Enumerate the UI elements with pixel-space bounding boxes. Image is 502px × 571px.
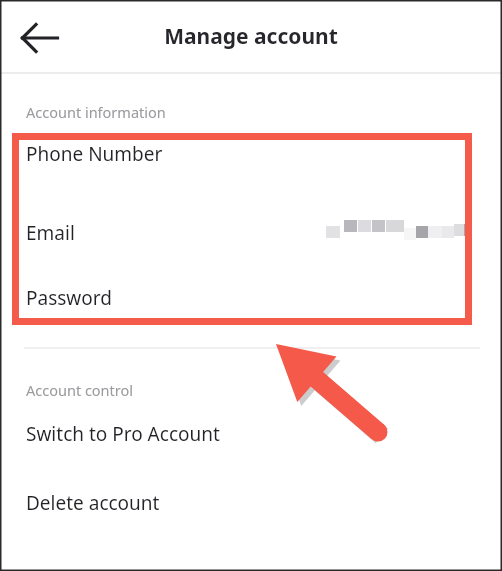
staticText: Account information [26,102,166,122]
staticText: Password [26,285,112,311]
staticText: Switch to Pro Account [26,421,220,447]
staticText: Delete account [26,490,160,516]
button[interactable]: Switch to Pro Account [20,413,502,455]
button[interactable]: Delete account [20,482,502,524]
staticText: Account control [26,380,134,400]
staticText: Phone Number [26,141,163,167]
staticText: Manage account [0,22,502,51]
button[interactable] [20,208,502,250]
staticText: Email [26,220,75,246]
button[interactable]: Phone Number [20,133,502,175]
button[interactable]: Password [20,277,502,319]
button[interactable]: Back [10,14,70,62]
